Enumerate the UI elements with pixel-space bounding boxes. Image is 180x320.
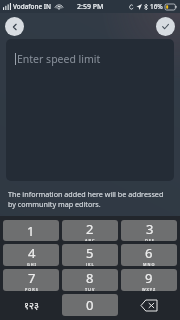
staticText: 6 xyxy=(145,244,153,262)
staticText: 4 xyxy=(28,244,36,262)
button[interactable]: 1 xyxy=(3,220,59,241)
button[interactable]: 8 xyxy=(62,269,118,291)
staticText: 7 xyxy=(28,269,36,287)
button[interactable]: Back xyxy=(5,17,24,36)
button[interactable]: 4 xyxy=(3,244,59,266)
button[interactable]: Confirm xyxy=(156,17,175,36)
button[interactable]: 2 xyxy=(62,220,118,241)
staticText: 0 xyxy=(86,296,94,314)
button[interactable]: 3 xyxy=(121,220,177,241)
staticText: 3 xyxy=(146,220,154,238)
button[interactable]: Enter speed limit xyxy=(6,39,174,181)
staticText: 8 xyxy=(86,269,94,287)
staticText: G H I xyxy=(27,262,36,266)
staticText: 1 xyxy=(27,222,35,240)
button[interactable]: १२३ xyxy=(3,294,59,316)
staticText: A B C xyxy=(85,238,95,241)
button[interactable]: 5 xyxy=(62,244,118,266)
staticText: 16% xyxy=(150,2,163,11)
staticText: P Q R S xyxy=(25,287,38,291)
staticText: 9 xyxy=(145,269,153,287)
button[interactable]: Backspace xyxy=(121,294,177,316)
staticText: M N O xyxy=(143,262,155,266)
staticText: 2:59 PM xyxy=(77,2,104,12)
staticText: १२३ xyxy=(24,299,39,312)
staticText: 5 xyxy=(86,244,94,262)
staticText: Enter speed limit xyxy=(17,52,101,66)
staticText: 2 xyxy=(86,220,94,238)
staticText: Vodafone IN xyxy=(13,2,52,11)
button[interactable]: 0 xyxy=(62,294,118,316)
button[interactable]: 6 xyxy=(121,244,177,266)
staticText: The information added here will be addre… xyxy=(8,189,172,209)
staticText: J K L xyxy=(86,262,94,266)
staticText: D E F xyxy=(145,238,154,241)
button[interactable]: 7 xyxy=(3,269,59,291)
staticText: T U V xyxy=(85,287,95,291)
button[interactable]: 9 xyxy=(121,269,177,291)
staticText: W X Y Z xyxy=(142,287,156,291)
